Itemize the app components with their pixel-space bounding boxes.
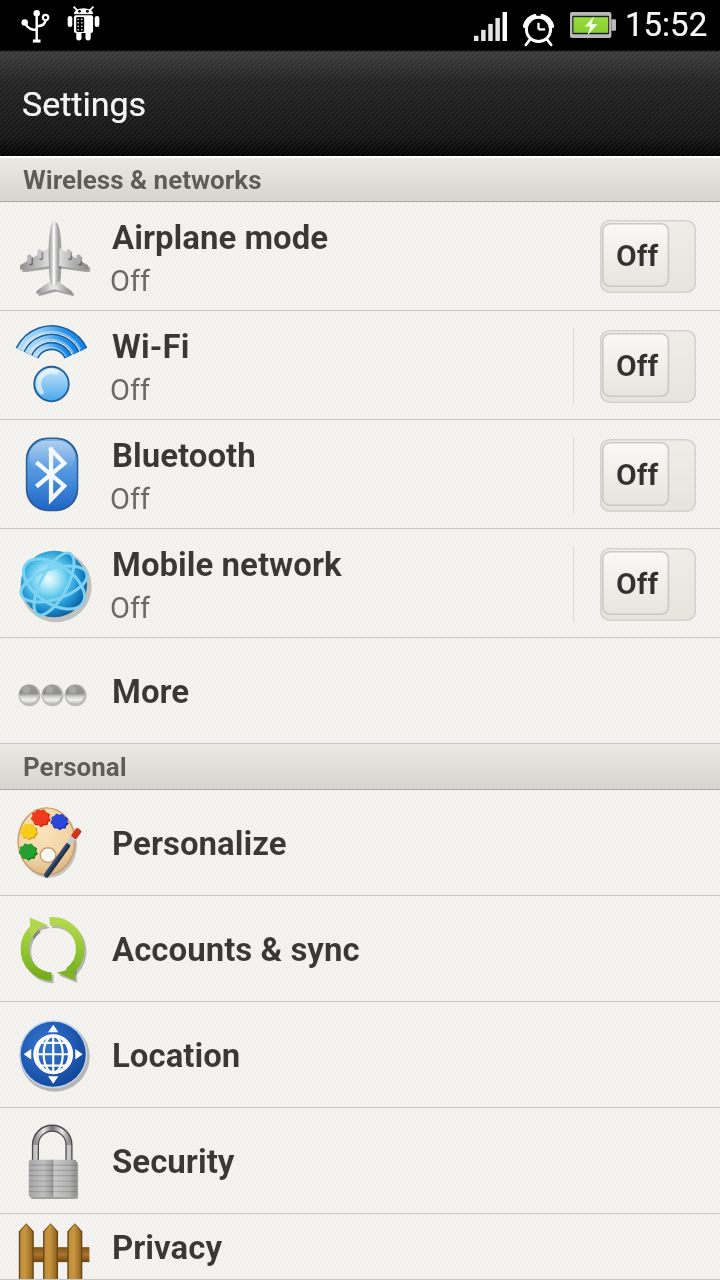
staticText: Security [112,1142,235,1181]
staticText: Location [112,1036,241,1075]
button[interactable]: Toggle, Off [600,439,696,512]
button[interactable]: Toggle, Off [600,330,696,403]
staticText: Off [616,238,659,273]
button[interactable]: Airplane mode [0,202,720,311]
button[interactable]: Security [0,1108,720,1214]
button[interactable]: Privacy [0,1214,720,1280]
staticText: Off [110,373,151,407]
button[interactable]: Accounts & sync [0,896,720,1002]
staticText: Accounts & sync [112,930,360,969]
staticText: Off [110,591,151,625]
button[interactable]: Personalize [0,790,720,896]
staticText: Off [110,482,151,516]
staticText: Off [616,348,659,383]
staticText: Airplane mode [112,218,329,257]
staticText: Off [110,264,151,298]
button[interactable]: More [0,638,720,744]
staticText: Privacy [112,1228,223,1267]
staticText: 15:52 [625,5,708,44]
staticText: Off [616,457,659,492]
button[interactable]: Wi-Fi [0,311,720,420]
button[interactable]: Toggle, Off [600,220,696,293]
staticText: Wi-Fi [112,327,190,366]
staticText: More [112,672,190,711]
staticText: Personalize [112,824,287,863]
staticText: Settings [22,84,147,124]
staticText: Bluetooth [112,436,256,475]
button[interactable]: Location [0,1002,720,1108]
button[interactable]: Toggle, Off [600,548,696,621]
button[interactable]: Mobile network [0,529,720,638]
staticText: Mobile network [112,545,342,584]
staticText: Off [616,566,659,601]
staticText: Personal [23,752,127,782]
button[interactable]: Bluetooth [0,420,720,529]
staticText: Wireless & networks [23,165,262,195]
